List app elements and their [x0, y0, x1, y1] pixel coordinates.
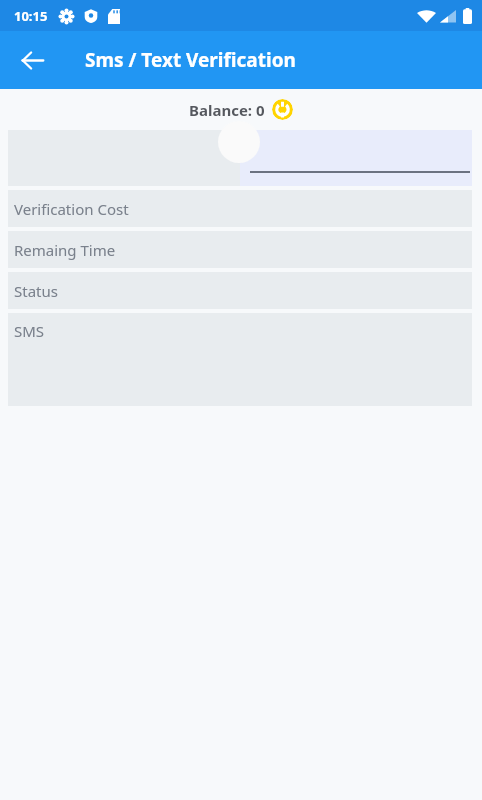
button[interactable]: Country selector — [8, 130, 240, 186]
button[interactable]: Status — [8, 272, 472, 309]
button[interactable]: SMS — [8, 313, 472, 406]
other: Security — [84, 9, 98, 23]
staticText: Remaing Time — [14, 240, 116, 260]
other: Settings — [59, 9, 74, 24]
button[interactable]: Coins — [272, 99, 293, 120]
button[interactable]: Back — [10, 38, 54, 82]
staticText: 10:15 — [14, 7, 48, 25]
button[interactable]: Verification Cost — [8, 190, 472, 227]
button[interactable]: Remaing Time — [8, 231, 472, 268]
other: Storage — [108, 9, 120, 24]
staticText: SMS — [14, 321, 45, 341]
staticText: Balance: 0 — [189, 100, 265, 120]
staticText: Status — [14, 281, 58, 301]
staticText: Sms / Text Verification — [85, 47, 296, 73]
button[interactable]: Selected country flag — [218, 121, 260, 163]
staticText: Verification Cost — [14, 199, 129, 219]
button[interactable] — [240, 130, 472, 186]
